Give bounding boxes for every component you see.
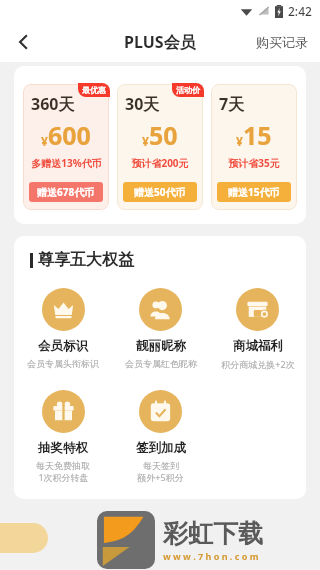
staticText: 彩虹下载	[163, 518, 263, 549]
staticText: 靓丽昵称	[136, 338, 186, 354]
staticText: 每天免费抽取	[36, 460, 90, 471]
button[interactable]: 会员标识	[14, 286, 112, 371]
staticText: 7天	[219, 93, 245, 115]
button[interactable]: 商城福利	[209, 286, 306, 372]
staticText: PLUS会员	[124, 31, 196, 53]
staticText: 额外+5积分	[137, 471, 184, 483]
staticText: 签到加成	[136, 440, 186, 456]
staticText: 每天签到	[143, 460, 179, 471]
staticText: 30天	[125, 93, 160, 115]
staticText: 尊享五大权益	[38, 250, 134, 270]
button[interactable]: 购买记录	[244, 26, 320, 58]
staticText: ¥	[41, 133, 48, 149]
staticText: 多赠送13%代币	[31, 156, 102, 170]
button[interactable]: 360天	[23, 84, 109, 210]
button[interactable]: 30天	[117, 84, 203, 210]
staticText: 360天	[31, 93, 75, 115]
staticText: ¥	[236, 133, 243, 149]
button[interactable]: 抽奖特权	[14, 388, 112, 485]
staticText: 预计省200元	[131, 156, 189, 170]
staticText: 50	[149, 118, 178, 152]
staticText: w w w . 7 h o n . c o m	[163, 550, 259, 562]
staticText: 最优惠	[82, 85, 106, 95]
staticText: 购买记录	[256, 34, 308, 50]
staticText: 商城福利	[233, 338, 283, 354]
button[interactable]: 靓丽昵称	[112, 286, 209, 371]
staticText: 2:42	[288, 3, 312, 19]
staticText: 会员专属红色昵称	[125, 358, 197, 369]
staticText: 活动价	[176, 85, 200, 95]
staticText: 1次积分转盘	[38, 471, 89, 483]
staticText: 会员标识	[38, 338, 88, 354]
button[interactable]: 7天	[211, 84, 297, 210]
staticText: ¥	[142, 133, 149, 149]
staticText: 15	[243, 118, 272, 152]
button[interactable]: Back	[4, 22, 44, 62]
staticText: 赠送15代币	[228, 185, 280, 199]
staticText: 积分商城兑换+2次	[221, 358, 295, 370]
staticText: 抽奖特权	[38, 440, 88, 456]
staticText: 预计省35元	[228, 156, 280, 170]
staticText: 会员专属头衔标识	[27, 358, 99, 369]
staticText: 赠送678代币	[37, 185, 95, 199]
staticText: 赠送50代币	[134, 185, 186, 199]
button[interactable]: 签到加成	[112, 388, 209, 485]
staticText: 600	[48, 118, 91, 152]
